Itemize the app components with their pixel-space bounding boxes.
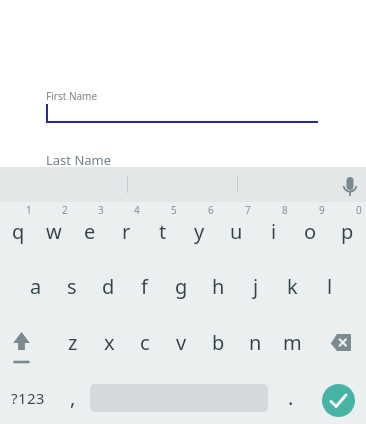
button[interactable]: y	[181, 202, 218, 257]
staticText: 4	[134, 203, 140, 217]
button[interactable]: r	[108, 202, 144, 257]
staticText: 6	[208, 203, 214, 217]
staticText: 1	[26, 203, 32, 217]
staticText: Last Name	[46, 151, 112, 169]
staticText: 8	[282, 203, 288, 217]
button[interactable]: h	[200, 257, 237, 312]
staticText: h	[212, 273, 225, 300]
staticText: p	[341, 218, 354, 245]
button[interactable]: g	[163, 257, 200, 312]
staticText: o	[304, 218, 317, 245]
button[interactable]: m	[274, 312, 311, 368]
staticText: ,	[70, 384, 76, 411]
button[interactable]: u	[218, 202, 255, 257]
button[interactable]: j	[237, 257, 274, 312]
staticText: q	[12, 218, 25, 245]
staticText: First Name	[46, 89, 98, 103]
button[interactable]: v	[163, 312, 200, 368]
button[interactable]: q	[0, 202, 36, 257]
staticText: t	[159, 218, 167, 245]
staticText: b	[212, 329, 225, 356]
staticText: l	[327, 273, 333, 300]
staticText: z	[68, 329, 78, 356]
staticText: d	[102, 273, 115, 300]
staticText: v	[176, 329, 187, 356]
staticText: r	[122, 218, 131, 245]
staticText: 0	[356, 203, 362, 217]
button[interactable]: s	[54, 257, 90, 312]
button[interactable]	[0, 312, 55, 368]
staticText: f	[141, 273, 148, 300]
button[interactable]: b	[200, 312, 237, 368]
button[interactable]: a	[18, 257, 54, 312]
staticText: j	[253, 273, 259, 300]
staticText: w	[46, 218, 62, 245]
button[interactable]: p	[329, 202, 366, 257]
button[interactable]: n	[237, 312, 274, 368]
staticText: u	[230, 218, 243, 245]
staticText: k	[287, 273, 298, 300]
staticText: m	[283, 329, 302, 356]
staticText: c	[140, 329, 150, 356]
button[interactable]: f	[126, 257, 163, 312]
staticText: ?123	[11, 388, 45, 408]
button[interactable]	[342, 177, 358, 197]
button[interactable]: e	[72, 202, 108, 257]
button[interactable]	[311, 312, 366, 368]
button[interactable]: c	[127, 312, 163, 368]
button[interactable]: d	[90, 257, 126, 312]
button[interactable]: i	[255, 202, 292, 257]
button[interactable]: o	[292, 202, 329, 257]
button[interactable]: k	[274, 257, 311, 312]
button[interactable]: l	[311, 257, 348, 312]
staticText: n	[249, 329, 262, 356]
staticText: x	[104, 329, 115, 356]
button[interactable]: t	[144, 202, 181, 257]
button[interactable]: ,	[55, 368, 90, 424]
button[interactable]: .	[268, 368, 313, 424]
staticText: s	[67, 273, 77, 300]
staticText: 9	[319, 203, 325, 217]
staticText: a	[30, 273, 42, 300]
staticText: 2	[62, 203, 68, 217]
staticText: i	[271, 218, 277, 245]
staticText: .	[288, 384, 294, 411]
button[interactable]	[322, 384, 355, 417]
button[interactable]: w	[36, 202, 72, 257]
staticText: g	[175, 273, 188, 300]
staticText: 3	[98, 203, 104, 217]
staticText: y	[194, 218, 205, 245]
staticText: e	[84, 218, 96, 245]
button[interactable]: ?123	[0, 368, 55, 424]
staticText: 5	[171, 203, 177, 217]
staticText: 7	[245, 203, 251, 217]
button[interactable]: x	[91, 312, 127, 368]
button[interactable]: z	[55, 312, 91, 368]
